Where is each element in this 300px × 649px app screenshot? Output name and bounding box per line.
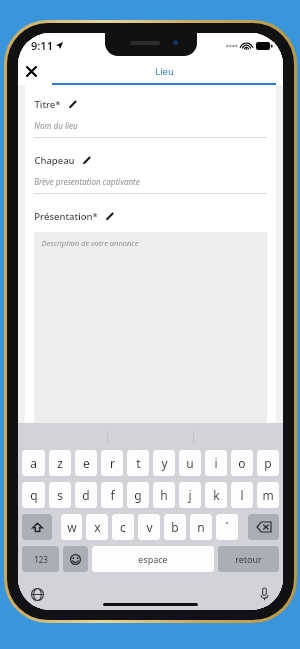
staticText: i: [214, 455, 218, 471]
button[interactable]: Changer de clavier: [27, 584, 47, 604]
staticText: Chapeau: [34, 154, 75, 167]
staticText: p: [264, 455, 272, 471]
button[interactable]: Modifier: [80, 154, 93, 167]
staticText: o: [238, 455, 246, 471]
button[interactable]: Lieu: [45, 58, 283, 85]
staticText: s: [57, 487, 63, 503]
button[interactable]: x: [86, 514, 108, 540]
button[interactable]: g: [127, 482, 149, 508]
button[interactable]: Dictée: [254, 584, 274, 604]
button[interactable]: l: [231, 482, 253, 508]
button[interactable]: n: [190, 514, 212, 540]
button[interactable]: Emoji: [63, 546, 88, 572]
button[interactable]: s: [49, 482, 71, 508]
button[interactable]: u: [179, 450, 201, 476]
button[interactable]: espace: [92, 546, 214, 572]
button[interactable]: t: [127, 450, 149, 476]
button[interactable]: r: [101, 450, 123, 476]
button[interactable]: h: [153, 482, 175, 508]
staticText: ´: [225, 519, 229, 535]
button[interactable]: o: [231, 450, 253, 476]
staticText: g: [134, 487, 142, 503]
button[interactable]: d: [75, 482, 97, 508]
button[interactable]: 123: [22, 546, 59, 572]
staticText: r: [110, 455, 115, 471]
staticText: Lieu: [155, 65, 174, 78]
button[interactable]: b: [164, 514, 186, 540]
button[interactable]: Majuscule: [22, 514, 52, 540]
button[interactable]: retour: [218, 546, 279, 572]
button[interactable]: k: [205, 482, 227, 508]
staticText: 123: [34, 554, 48, 565]
button[interactable]: m: [257, 482, 279, 508]
button[interactable]: Modifier: [103, 210, 116, 223]
button[interactable]: y: [153, 450, 175, 476]
staticText: 9:11: [31, 38, 53, 53]
staticText: d: [82, 487, 90, 503]
staticText: y: [161, 455, 168, 471]
button[interactable]: p: [257, 450, 279, 476]
button[interactable]: Effacer: [248, 514, 279, 540]
staticText: q: [30, 487, 38, 503]
button[interactable]: v: [138, 514, 160, 540]
staticText: Description de votre annonce: [41, 238, 139, 248]
staticText: k: [213, 487, 220, 503]
staticText: f: [110, 487, 115, 503]
staticText: x: [94, 519, 101, 535]
staticText: u: [186, 455, 194, 471]
staticText: retour: [235, 553, 262, 565]
staticText: n: [197, 519, 205, 535]
staticText: m: [262, 487, 274, 503]
staticText: Nom du lieu: [34, 120, 78, 131]
staticText: e: [83, 455, 90, 471]
staticText: c: [120, 519, 126, 535]
button[interactable]: q: [22, 482, 45, 508]
button[interactable]: ´: [216, 514, 238, 540]
button[interactable]: w: [61, 514, 82, 540]
staticText: j: [188, 487, 192, 503]
button[interactable]: z: [49, 450, 71, 476]
staticText: Présentation*: [34, 210, 98, 223]
staticText: z: [57, 455, 63, 471]
staticText: l: [240, 487, 244, 503]
staticText: Titre*: [34, 98, 61, 111]
button[interactable]: a: [22, 450, 45, 476]
button[interactable]: j: [179, 482, 201, 508]
button[interactable]: f: [101, 482, 123, 508]
button[interactable]: Modifier: [66, 98, 79, 111]
staticText: espace: [138, 553, 168, 565]
button[interactable]: i: [205, 450, 227, 476]
button[interactable]: c: [112, 514, 134, 540]
button[interactable]: Description de votre annonce: [34, 232, 267, 423]
staticText: t: [136, 455, 141, 471]
staticText: Brève presentation captivante: [34, 176, 140, 187]
staticText: h: [160, 487, 168, 503]
staticText: b: [171, 519, 179, 535]
staticText: a: [30, 455, 37, 471]
staticText: v: [146, 519, 153, 535]
button[interactable]: e: [75, 450, 97, 476]
staticText: w: [67, 519, 77, 535]
button[interactable]: Fermer: [18, 58, 45, 85]
